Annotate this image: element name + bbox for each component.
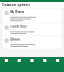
button[interactable]: Classwork	[13, 57, 26, 72]
button[interactable]: Coach Diaz	[2, 23, 61, 36]
button[interactable]: Library	[2, 36, 61, 48]
staticText: Coach Diaz	[10, 25, 26, 28]
staticText: 2h ago	[10, 14, 15, 16]
staticText: Classroom updates	[1, 3, 29, 7]
button[interactable]: Ms. Rivera	[2, 8, 61, 23]
staticText: Ms. Rivera	[10, 10, 24, 14]
button[interactable]: Stream	[0, 57, 13, 72]
button[interactable]: More	[51, 57, 64, 72]
staticText: Yesterday	[10, 41, 18, 43]
button[interactable]: People	[26, 57, 38, 72]
staticText: Library	[10, 38, 19, 41]
button[interactable]: Calendar	[38, 57, 51, 72]
